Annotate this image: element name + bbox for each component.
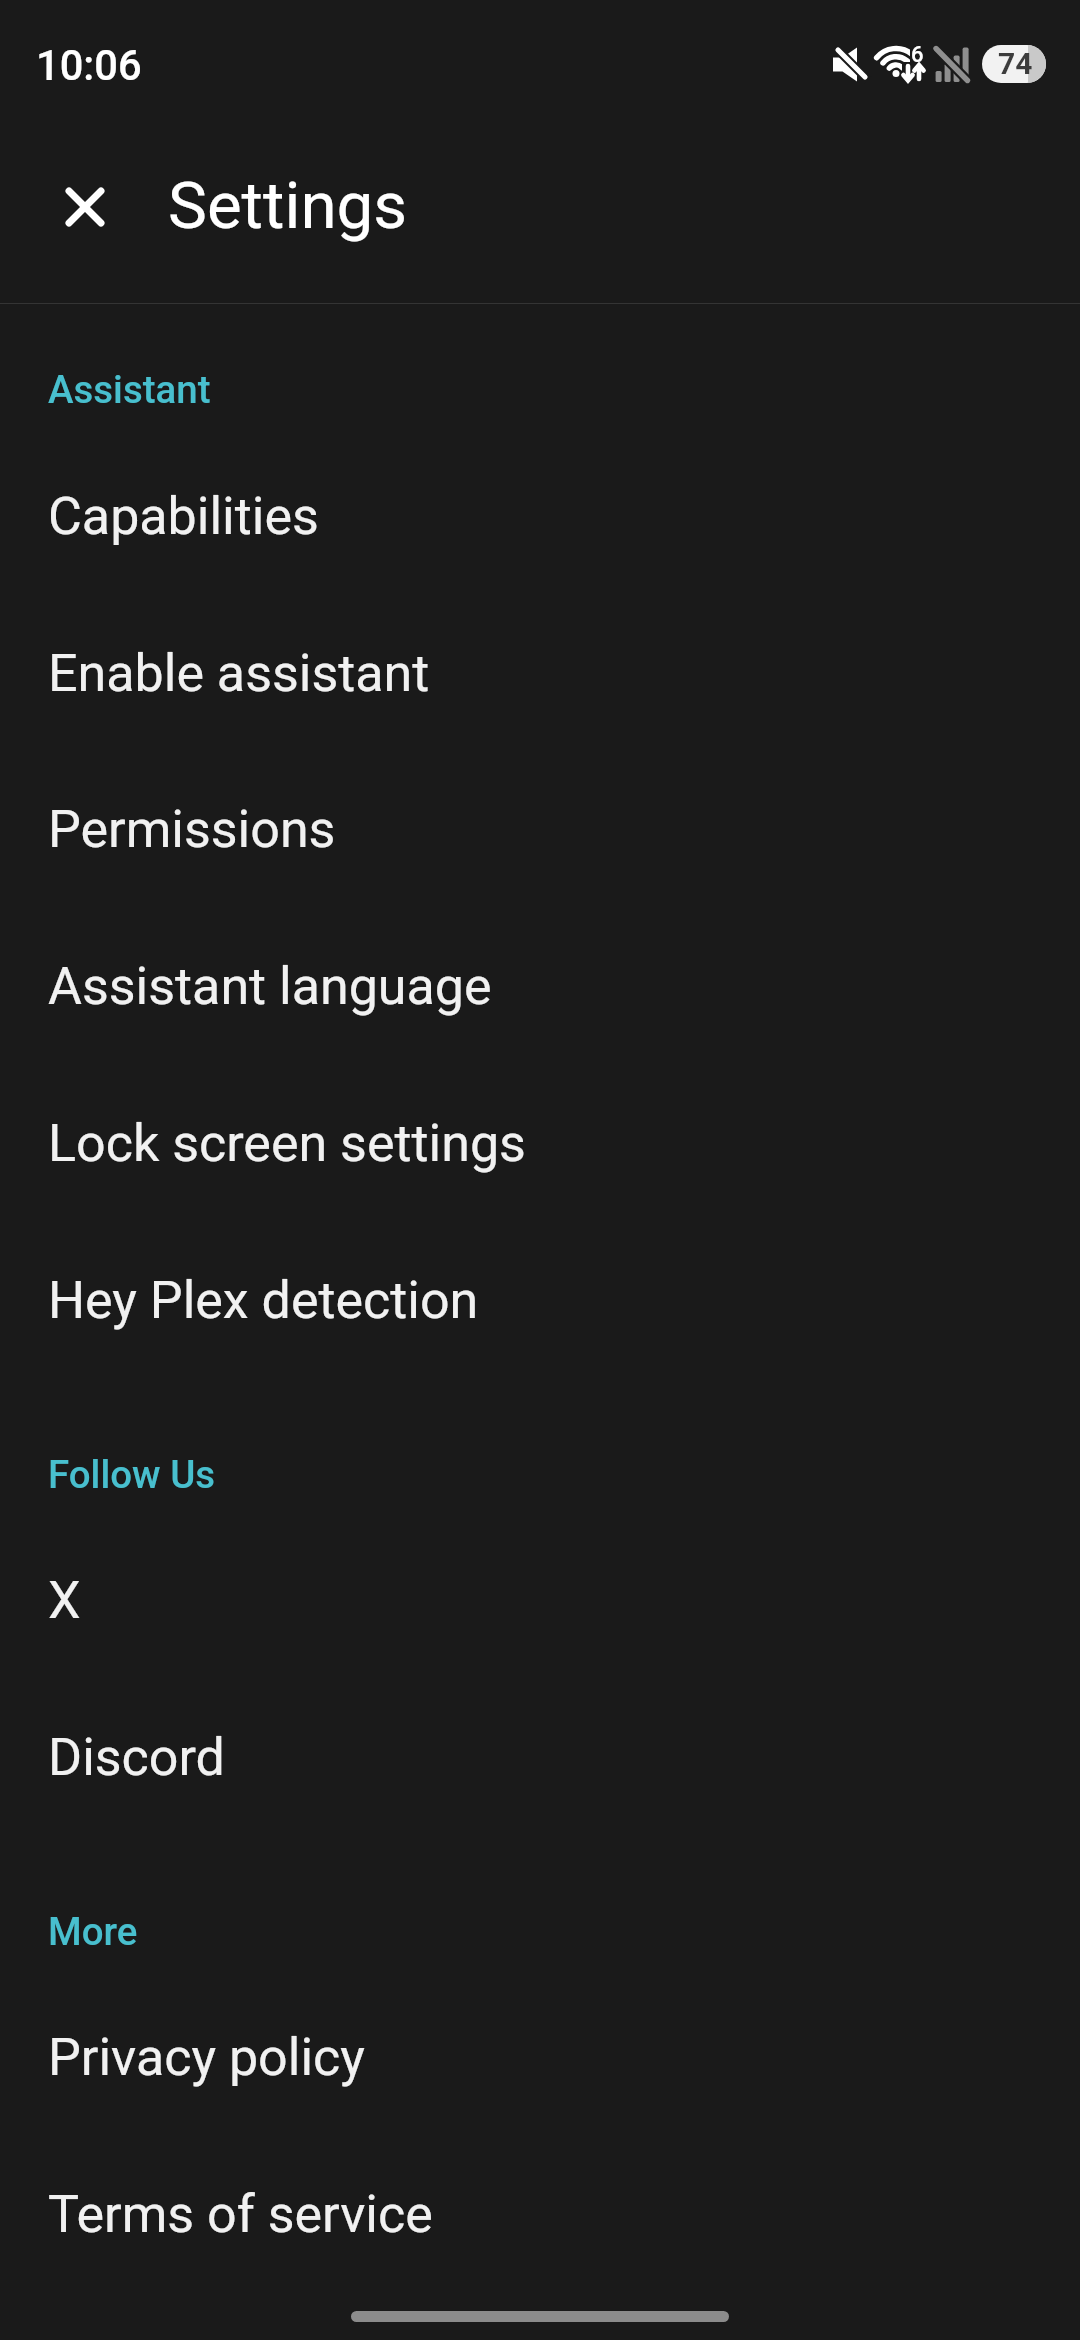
staticText: Discord [48, 1727, 225, 1788]
button[interactable]: Privacy policy [0, 1977, 1080, 2134]
staticText: Terms of service [48, 2184, 433, 2245]
button[interactable]: Discord [0, 1677, 1080, 1834]
staticText: Assistant language [48, 956, 492, 1017]
staticText: Capabilities [48, 486, 319, 547]
staticText: Follow Us [48, 1452, 216, 1497]
button[interactable]: Close [29, 151, 141, 263]
staticText: 6 [911, 42, 924, 68]
button[interactable]: Lock screen settings [0, 1063, 1080, 1220]
button[interactable]: Hey Plex detection [0, 1220, 1080, 1377]
staticText: Assistant [48, 367, 211, 412]
staticText: 74 [998, 46, 1033, 81]
staticText: X [48, 1570, 81, 1631]
button[interactable]: X [0, 1520, 1080, 1677]
button[interactable]: Enable assistant [0, 593, 1080, 750]
staticText: Enable assistant [48, 643, 430, 704]
staticText: Permissions [48, 799, 336, 860]
button[interactable]: Permissions [0, 749, 1080, 906]
staticText: Lock screen settings [48, 1113, 526, 1174]
staticText: Privacy policy [48, 2027, 365, 2088]
staticText: Hey Plex detection [48, 1270, 479, 1331]
button[interactable]: Capabilities [0, 436, 1080, 593]
staticText: Settings [168, 167, 408, 244]
staticText: 10:06 [36, 41, 142, 90]
button[interactable]: Terms of service [0, 2134, 1080, 2291]
button[interactable]: Assistant language [0, 906, 1080, 1063]
staticText: More [48, 1909, 138, 1954]
